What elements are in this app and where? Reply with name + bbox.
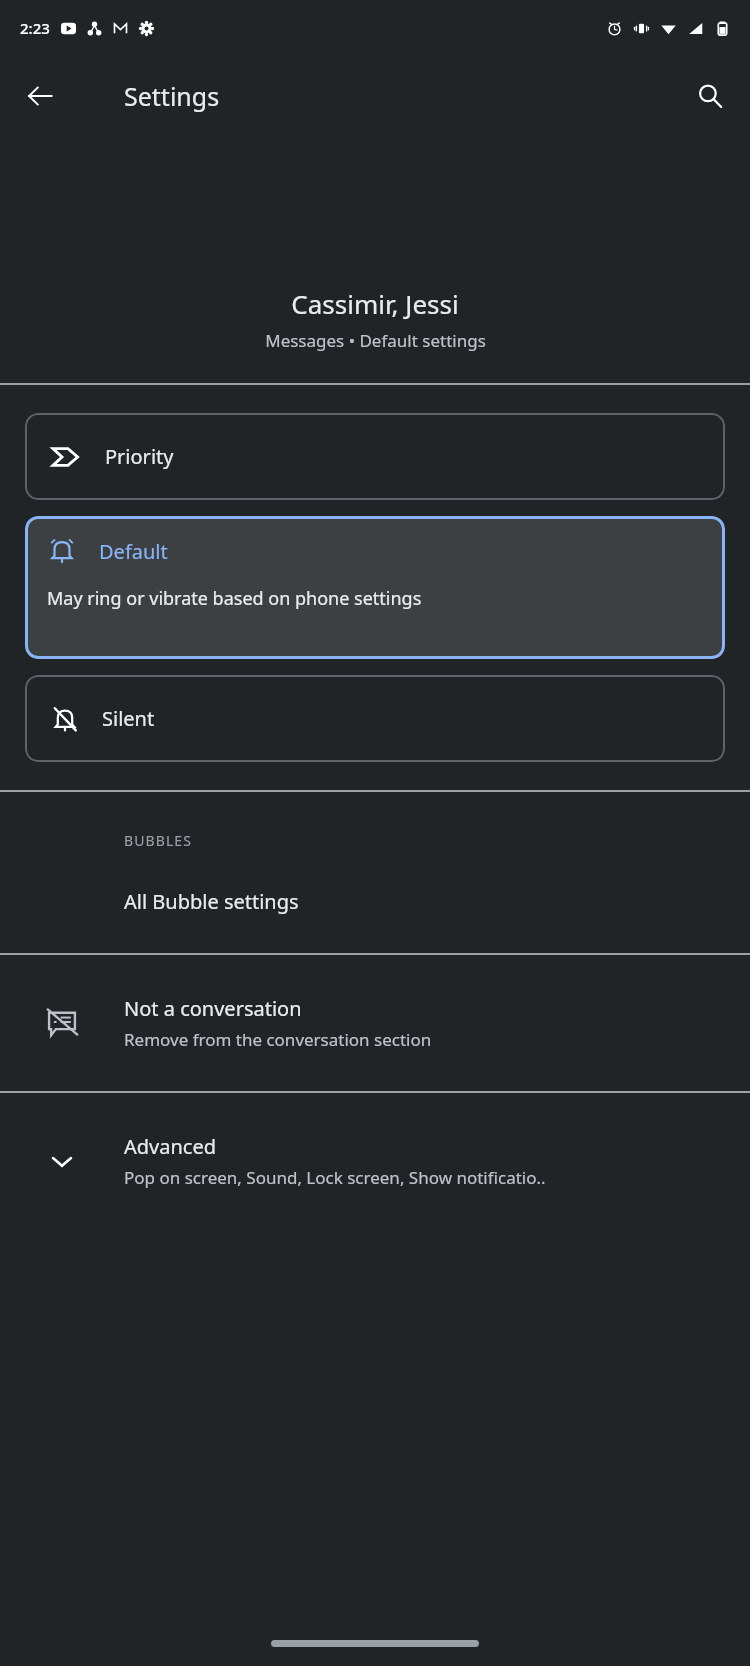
button[interactable]: Default bbox=[25, 516, 725, 659]
staticText: Pop on screen, Sound, Lock screen, Show … bbox=[124, 1166, 546, 1189]
button[interactable]: Back bbox=[12, 68, 68, 124]
staticText: Silent bbox=[102, 705, 155, 732]
staticText: Settings bbox=[124, 79, 220, 113]
staticText: BUBBLES bbox=[124, 831, 193, 850]
staticText: Cassimir, Jessi bbox=[291, 286, 459, 321]
button[interactable]: Priority bbox=[25, 413, 725, 500]
button[interactable]: Not a conversation bbox=[0, 955, 750, 1091]
staticText: 2:23 bbox=[20, 18, 50, 38]
staticText: Remove from the conversation section bbox=[124, 1028, 432, 1051]
staticText: All Bubble settings bbox=[124, 888, 299, 915]
button[interactable]: Advanced bbox=[0, 1093, 750, 1229]
staticText: Messages • Default settings bbox=[265, 329, 486, 352]
staticText: Default bbox=[99, 538, 168, 565]
staticText: May ring or vibrate based on phone setti… bbox=[47, 586, 422, 611]
staticText: Priority bbox=[105, 443, 174, 470]
button[interactable]: Search bbox=[682, 68, 738, 124]
staticText: Not a conversation bbox=[124, 995, 302, 1022]
button[interactable]: Silent bbox=[25, 675, 725, 762]
staticText: Advanced bbox=[124, 1133, 216, 1160]
button[interactable]: All Bubble settings bbox=[0, 888, 750, 953]
